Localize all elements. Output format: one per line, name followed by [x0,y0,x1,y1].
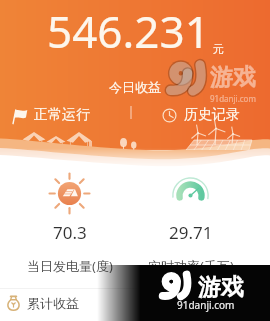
staticText: 今日收益 [109,79,161,95]
button[interactable]: 正常运行 [11,106,135,124]
staticText: 91danji.com [177,298,235,312]
staticText: 546.231 [47,1,210,61]
staticText: 当日发电量(度) [27,257,113,275]
staticText: 70.3 [53,221,87,244]
staticText: 正常运行 [34,106,90,124]
staticText: 累计收益 [27,295,79,311]
staticText: 游戏 [210,63,256,92]
staticText: 91danji.com [210,93,256,104]
button[interactable]: 历史记录 [162,106,270,124]
staticText: 实时功率(千瓦) [148,257,234,275]
staticText: 历史记录 [184,106,240,124]
staticText: 29.71 [169,221,213,244]
staticText: 游戏 [198,273,244,302]
button[interactable]: 累计收益 [5,294,270,311]
staticText: 元 [213,42,224,56]
